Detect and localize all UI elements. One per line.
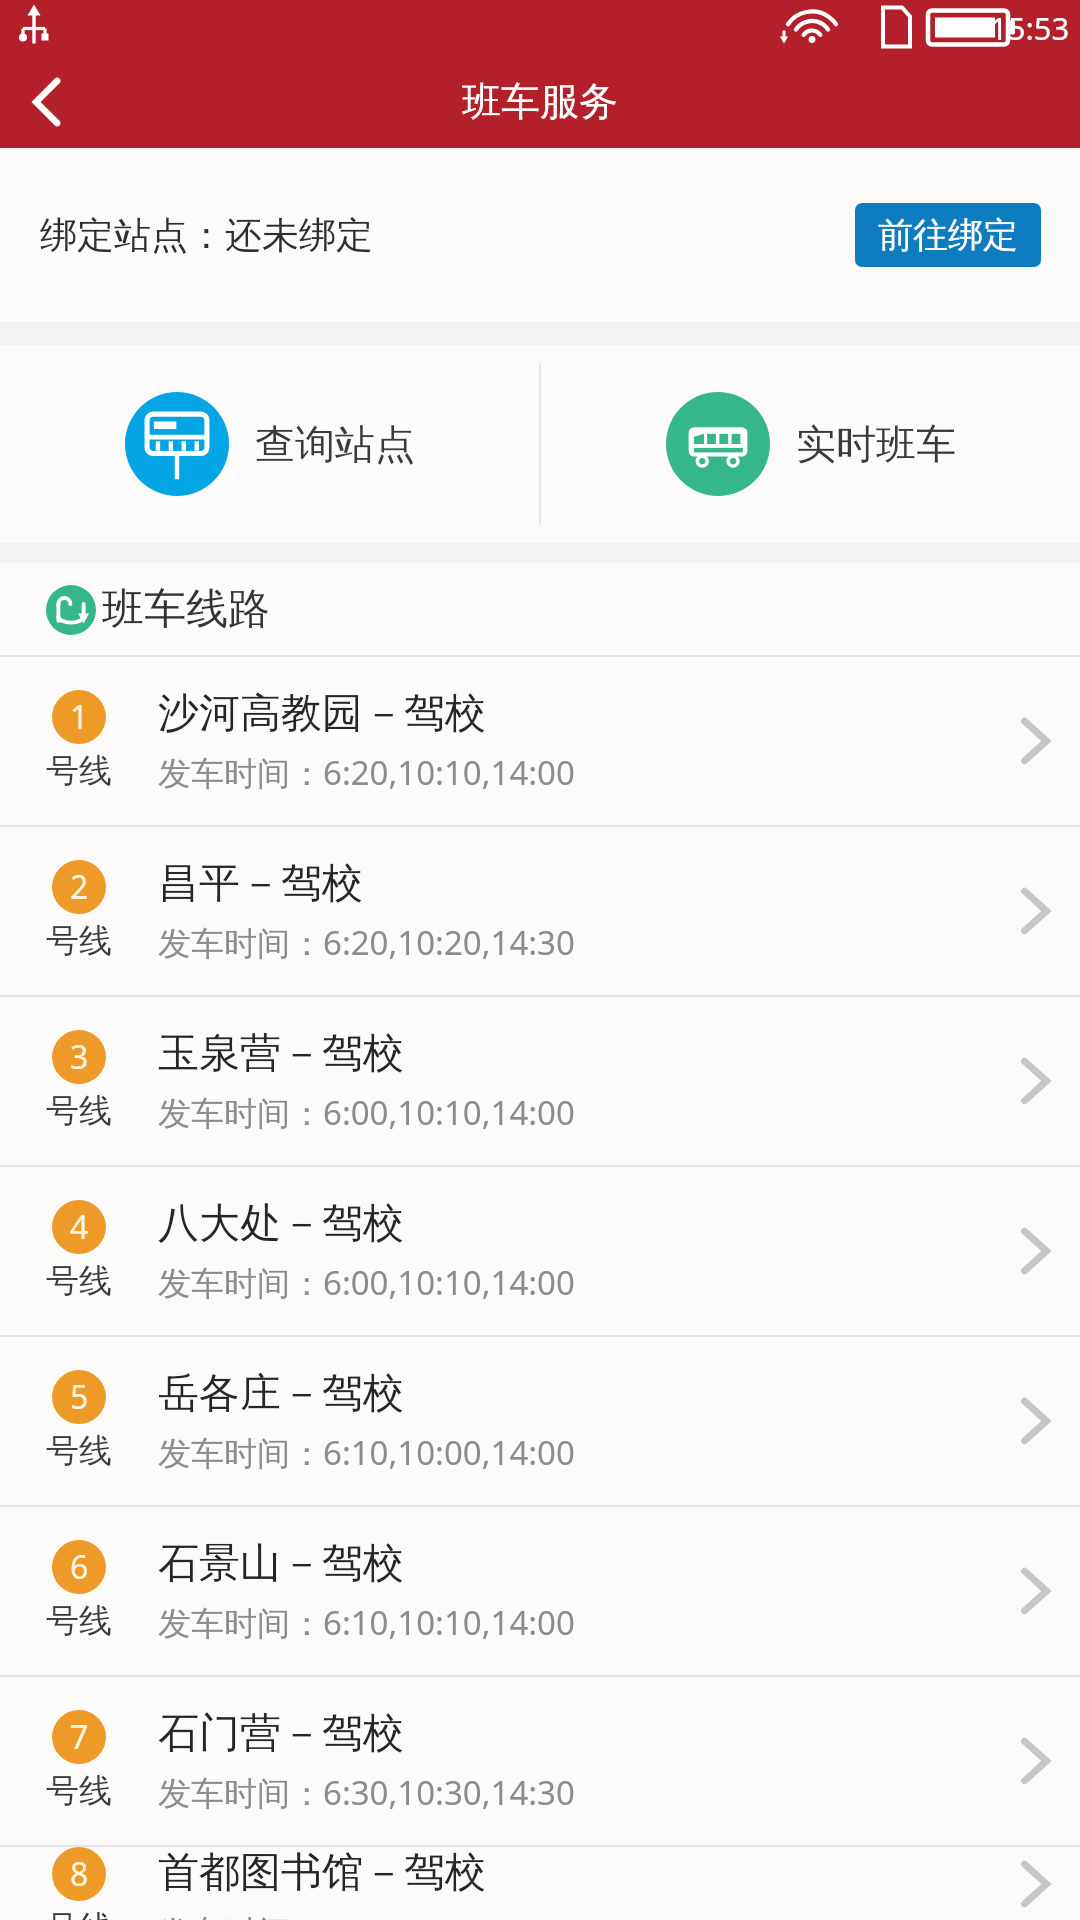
staticText: 发车时间：6:20,10:10,14:00 (158, 750, 575, 795)
button[interactable]: 3 (0, 997, 1080, 1165)
button[interactable]: 查询站点 (0, 345, 539, 543)
staticText: 号线 (46, 1430, 112, 1472)
staticText: 岳各庄－驾校 (158, 1368, 404, 1420)
staticText: 7 (70, 1715, 89, 1759)
staticText: 八大处－驾校 (158, 1198, 404, 1250)
staticText: 号线 (46, 1770, 112, 1812)
button[interactable]: 实时班车 (541, 345, 1080, 543)
button[interactable]: 前往绑定 (855, 203, 1041, 267)
staticText: 号线 (46, 1907, 112, 1920)
staticText: 6 (70, 1545, 89, 1589)
button[interactable]: Back (0, 55, 96, 148)
staticText: 号线 (46, 920, 112, 962)
staticText: 班车线路 (102, 583, 270, 636)
staticText: 发车时间：6:10,10:10,14:00 (158, 1600, 575, 1645)
staticText: 号线 (46, 1090, 112, 1132)
button[interactable]: 7 (0, 1677, 1080, 1845)
staticText: 玉泉营－驾校 (158, 1028, 404, 1080)
button[interactable]: 5 (0, 1337, 1080, 1505)
staticText: 发车时间：6:30,10:30,14:30 (158, 1770, 575, 1815)
staticText: 号线 (46, 1260, 112, 1302)
staticText: 号线 (46, 1600, 112, 1642)
staticText: 发车时间：6:20,10:20,14:30 (158, 920, 575, 965)
staticText: 号线 (46, 750, 112, 792)
staticText: 石门营－驾校 (158, 1708, 404, 1760)
staticText: 查询站点 (255, 419, 415, 469)
staticText: 15:53 (990, 7, 1070, 49)
staticText: 发车时间：6:00,10:10,14:00 (158, 1090, 575, 1135)
staticText: 前往绑定 (878, 213, 1018, 257)
staticText: 2 (70, 865, 89, 909)
staticText: 绑定站点：还未绑定 (40, 212, 373, 259)
button[interactable]: 1 (0, 657, 1080, 825)
staticText: 沙河高教园－驾校 (158, 688, 486, 740)
button[interactable]: 6 (0, 1507, 1080, 1675)
staticText: 8 (70, 1852, 89, 1896)
staticText: 1 (70, 695, 89, 739)
staticText: 实时班车 (796, 419, 956, 469)
staticText: 4 (70, 1205, 89, 1249)
staticText: 发车时间：6:10,10:00,14:00 (158, 1430, 575, 1475)
staticText: 昌平－驾校 (158, 858, 363, 910)
button[interactable]: 8 (0, 1847, 1080, 1920)
staticText: 5 (70, 1375, 89, 1419)
staticText: 班车服务 (462, 77, 618, 126)
staticText: 首都图书馆－驾校 (158, 1847, 486, 1899)
staticText: 3 (70, 1035, 89, 1079)
staticText: 发车时间：6:30,10:30,14:30 (158, 1909, 575, 1920)
staticText: 石景山－驾校 (158, 1538, 404, 1590)
staticText: 发车时间：6:00,10:10,14:00 (158, 1260, 575, 1305)
button[interactable]: 4 (0, 1167, 1080, 1335)
button[interactable]: 2 (0, 827, 1080, 995)
